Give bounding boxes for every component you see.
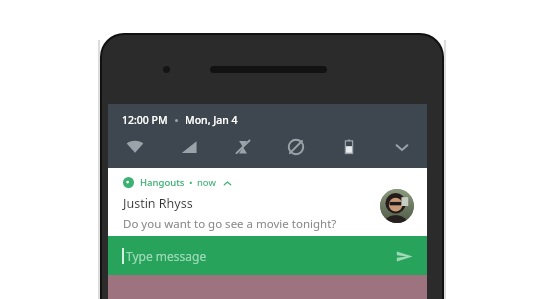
- button[interactable]: Send: [389, 241, 419, 271]
- button[interactable]: Do not disturb: [283, 134, 309, 160]
- button[interactable]: Justin Rhyss avatar: [380, 189, 414, 223]
- button[interactable]: Expand quick settings: [389, 134, 415, 160]
- staticText: Mon, Jan 4: [185, 113, 238, 127]
- button[interactable]: Hangouts: [108, 168, 427, 236]
- button[interactable]: Collapse notification: [221, 177, 233, 189]
- button[interactable]: Type message: [108, 236, 427, 275]
- staticText: 12:00 PM: [122, 113, 168, 127]
- staticText: Do you want to go see a movie tonight?: [123, 216, 337, 232]
- button[interactable]: Cellular signal: [176, 134, 202, 160]
- staticText: now: [197, 176, 216, 189]
- staticText: Justin Rhyss: [123, 195, 193, 212]
- button[interactable]: Alarm: [230, 134, 256, 160]
- staticText: Hangouts: [140, 176, 185, 189]
- staticText: Type message: [126, 248, 207, 264]
- button[interactable]: Wi-Fi: [122, 134, 148, 160]
- button[interactable]: Battery: [336, 134, 362, 160]
- staticText: •: [189, 176, 193, 189]
